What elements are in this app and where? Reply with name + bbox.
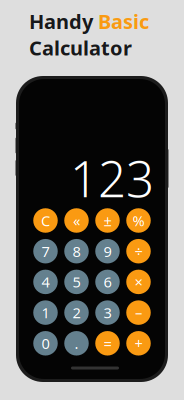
staticText: 6 <box>103 272 111 292</box>
button[interactable]: 9 <box>95 239 120 263</box>
button[interactable]: – <box>126 300 151 325</box>
staticText: + <box>134 334 142 353</box>
staticText: – <box>135 303 142 322</box>
staticText: 4 <box>41 272 49 292</box>
button[interactable]: ÷ <box>126 239 151 263</box>
staticText: ÷ <box>134 241 142 261</box>
staticText: Calculator <box>29 35 132 61</box>
staticText: C <box>41 211 50 230</box>
staticText: 3 <box>103 303 111 322</box>
button[interactable]: + <box>126 331 151 356</box>
button[interactable]: = <box>95 331 120 356</box>
staticText: 123 <box>70 145 154 211</box>
staticText: 9 <box>103 241 111 261</box>
button[interactable]: 3 <box>95 300 120 325</box>
staticText: 0 <box>41 334 49 353</box>
button[interactable]: C <box>33 208 58 233</box>
staticText: 5 <box>72 272 80 292</box>
button[interactable]: × <box>126 270 151 294</box>
button[interactable]: 0 <box>33 331 58 356</box>
staticText: 2 <box>72 303 80 322</box>
button[interactable]: 2 <box>64 300 89 325</box>
staticText: 7 <box>41 241 49 261</box>
button[interactable]: % <box>126 208 151 233</box>
staticText: % <box>132 211 144 230</box>
button[interactable]: 6 <box>95 270 120 294</box>
staticText: « <box>73 211 80 230</box>
button[interactable]: 4 <box>33 270 58 294</box>
staticText: 8 <box>72 241 80 261</box>
button[interactable]: . <box>64 331 89 356</box>
button[interactable]: ± <box>95 208 120 233</box>
staticText: Handy <box>29 8 98 35</box>
staticText: × <box>134 272 142 292</box>
staticText: Basic <box>98 8 149 35</box>
button[interactable]: 7 <box>33 239 58 263</box>
staticText: ± <box>103 211 111 230</box>
staticText: . <box>74 334 78 353</box>
button[interactable]: 1 <box>33 300 58 325</box>
button[interactable]: 8 <box>64 239 89 263</box>
staticText: = <box>103 334 111 353</box>
staticText: 1 <box>41 303 49 322</box>
button[interactable]: « <box>64 208 89 233</box>
button[interactable]: 5 <box>64 270 89 294</box>
